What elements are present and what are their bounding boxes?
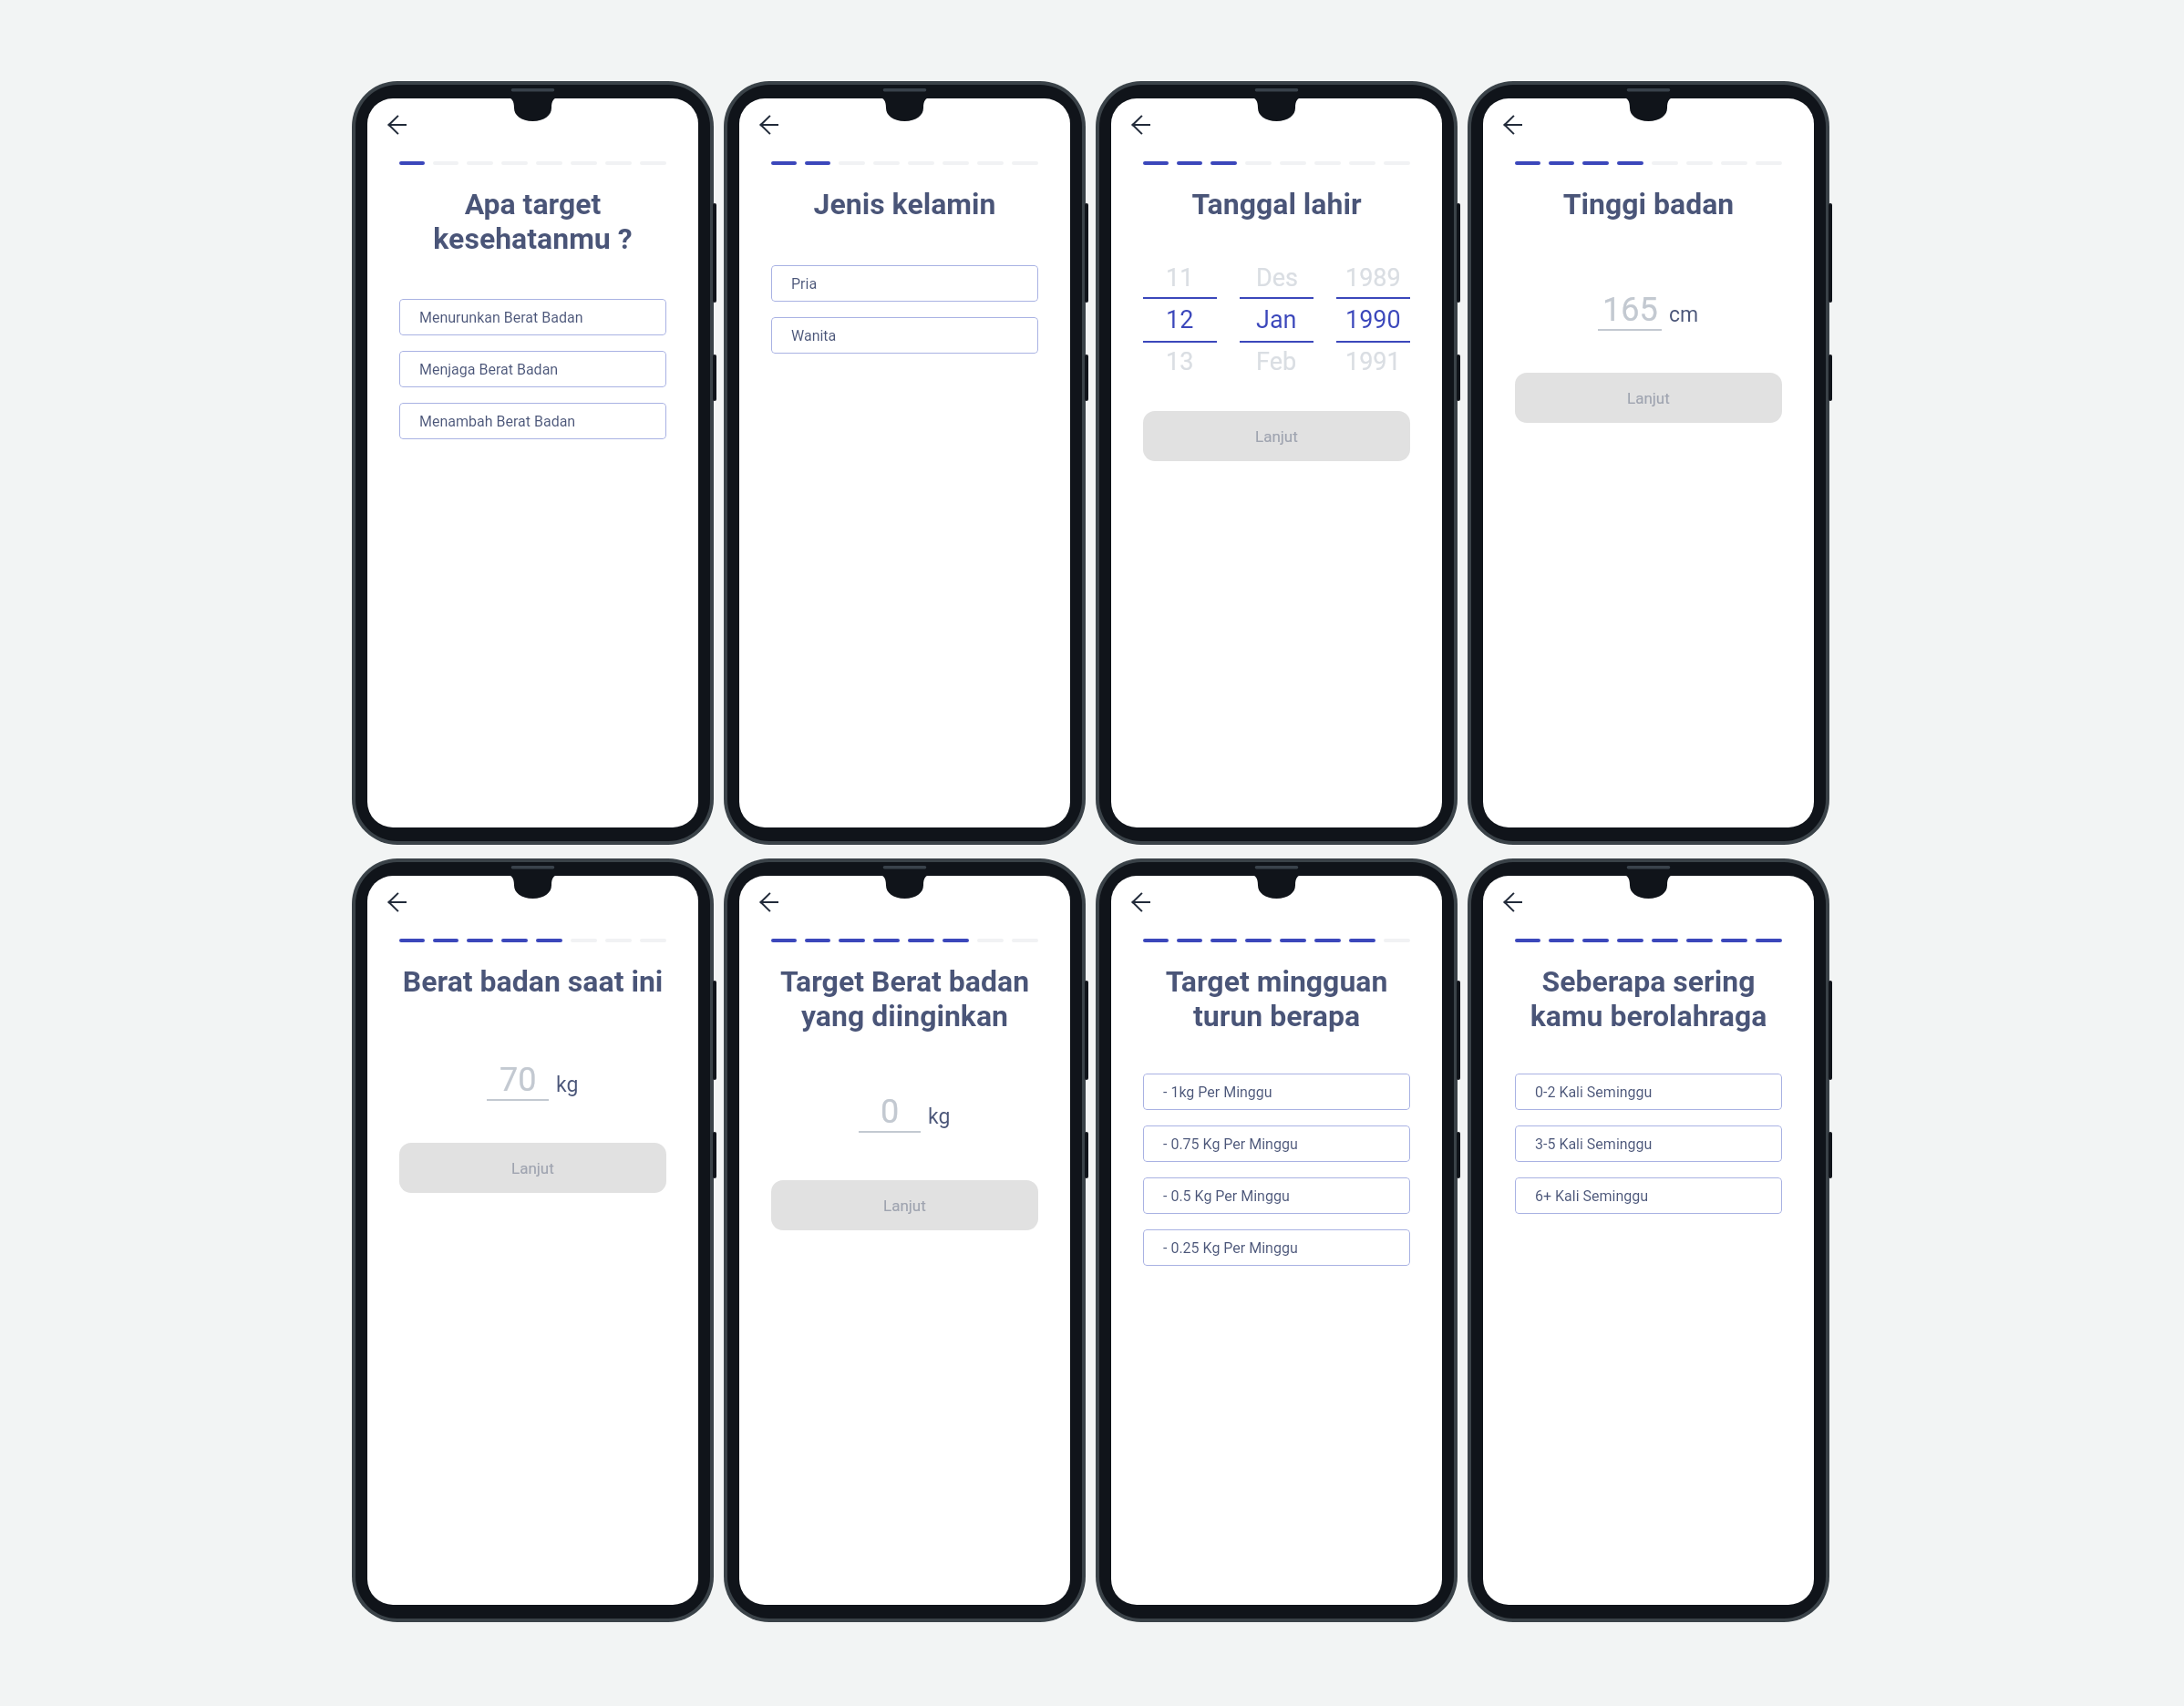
staticText: - 0.25 Kg Per Minggu: [1163, 1239, 1298, 1257]
button[interactable]: Back: [1129, 889, 1155, 915]
staticText: Lanjut: [1255, 427, 1298, 446]
staticText: Apa target kesehatanmu ?: [399, 187, 666, 256]
button[interactable]: Back: [757, 112, 783, 138]
staticText: 13: [1166, 347, 1194, 376]
button[interactable]: 6+ Kali Seminggu: [1515, 1177, 1782, 1214]
staticText: kg: [928, 1105, 951, 1129]
staticText: Menjaga Berat Badan: [419, 361, 559, 378]
button[interactable]: Back: [1501, 112, 1527, 138]
staticText: Berat badan saat ini: [399, 964, 666, 999]
staticText: Lanjut: [511, 1159, 554, 1177]
staticText: Jenis kelamin: [771, 187, 1038, 221]
button[interactable]: Back: [757, 889, 783, 915]
staticText: Menurunkan Berat Badan: [419, 309, 583, 326]
button[interactable]: - 0.75 Kg Per Minggu: [1143, 1125, 1410, 1162]
staticText: - 1kg Per Minggu: [1163, 1084, 1272, 1101]
staticText: 1990: [1345, 305, 1401, 334]
staticText: 165: [1602, 291, 1658, 329]
staticText: Jan: [1256, 305, 1297, 334]
staticText: 1991: [1345, 347, 1401, 376]
staticText: 1989: [1345, 263, 1401, 293]
button[interactable]: Wanita: [771, 317, 1038, 354]
button[interactable]: Back: [1501, 889, 1527, 915]
staticText: 11: [1166, 263, 1194, 293]
button[interactable]: 0-2 Kali Seminggu: [1515, 1074, 1782, 1110]
staticText: 6+ Kali Seminggu: [1535, 1187, 1649, 1205]
button[interactable]: - 0.5 Kg Per Minggu: [1143, 1177, 1410, 1214]
button[interactable]: Back: [1129, 112, 1155, 138]
staticText: - 0.75 Kg Per Minggu: [1163, 1136, 1298, 1153]
button[interactable]: Pria: [771, 265, 1038, 302]
button[interactable]: Menambah Berat Badan: [399, 403, 666, 439]
button[interactable]: 3-5 Kali Seminggu: [1515, 1125, 1782, 1162]
staticText: Target Berat badan yang diinginkan: [771, 964, 1038, 1033]
staticText: 0: [881, 1093, 900, 1131]
staticText: Target mingguan turun berapa: [1143, 964, 1410, 1033]
staticText: Lanjut: [883, 1197, 926, 1215]
staticText: Feb: [1256, 347, 1297, 376]
staticText: Tanggal lahir: [1143, 187, 1410, 221]
button[interactable]: Lanjut: [771, 1180, 1038, 1230]
staticText: kg: [556, 1073, 579, 1097]
staticText: Seberapa sering kamu berolahraga: [1515, 964, 1782, 1033]
staticText: - 0.5 Kg Per Minggu: [1163, 1187, 1290, 1205]
staticText: Lanjut: [1627, 389, 1670, 407]
button[interactable]: Lanjut: [1143, 411, 1410, 461]
staticText: Pria: [791, 275, 818, 293]
button[interactable]: Back: [386, 889, 411, 915]
staticText: 3-5 Kali Seminggu: [1535, 1136, 1653, 1153]
staticText: 12: [1166, 305, 1194, 334]
staticText: Tinggi badan: [1515, 187, 1782, 221]
button[interactable]: Back: [386, 112, 411, 138]
staticText: Wanita: [791, 327, 837, 344]
button[interactable]: - 0.25 Kg Per Minggu: [1143, 1229, 1410, 1266]
staticText: cm: [1669, 303, 1699, 327]
button[interactable]: Menjaga Berat Badan: [399, 351, 666, 387]
button[interactable]: - 1kg Per Minggu: [1143, 1074, 1410, 1110]
button[interactable]: Lanjut: [399, 1143, 666, 1193]
staticText: 0-2 Kali Seminggu: [1535, 1084, 1653, 1101]
button[interactable]: Menurunkan Berat Badan: [399, 299, 666, 335]
staticText: 70: [500, 1061, 537, 1099]
staticText: Des: [1256, 263, 1298, 293]
staticText: Menambah Berat Badan: [419, 413, 576, 430]
button[interactable]: Lanjut: [1515, 373, 1782, 423]
